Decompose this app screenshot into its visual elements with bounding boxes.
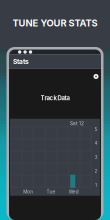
staticText: TUNE YOUR STATS xyxy=(12,17,97,29)
staticText: 3 xyxy=(94,154,97,160)
staticText: Mon xyxy=(23,189,33,194)
staticText: 1 xyxy=(95,182,97,188)
staticText: Set 12 xyxy=(70,121,84,126)
staticText: Stats xyxy=(13,57,29,66)
staticText: Track Data xyxy=(40,94,69,102)
staticText: 2 xyxy=(94,168,97,174)
staticText: Tue xyxy=(46,189,55,194)
staticText: 4 xyxy=(94,140,97,146)
button[interactable]: Account xyxy=(92,72,100,80)
staticText: 5 xyxy=(94,126,97,132)
staticText: Wed xyxy=(69,189,79,194)
